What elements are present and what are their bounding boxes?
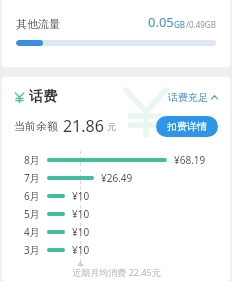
staticText: 扣费详情 bbox=[167, 120, 207, 133]
staticText: ¥10 bbox=[72, 243, 90, 257]
button[interactable]: 6月 bbox=[2, 187, 230, 205]
staticText: 7月 bbox=[24, 171, 40, 185]
staticText: 3月 bbox=[24, 243, 40, 257]
staticText: 其他流量 bbox=[16, 17, 60, 31]
button[interactable]: 7月 bbox=[2, 169, 230, 187]
staticText: 0.05 bbox=[148, 13, 174, 31]
button[interactable]: 扣费详情 bbox=[156, 116, 218, 137]
staticText: 6月 bbox=[24, 189, 40, 203]
staticText: ¥26.49 bbox=[101, 171, 133, 185]
staticText: 4月 bbox=[24, 225, 40, 239]
button[interactable]: 5月 bbox=[2, 205, 230, 223]
staticText: /0.49GB bbox=[186, 19, 216, 30]
staticText: 话费 bbox=[29, 88, 57, 106]
staticText: 21.86 bbox=[63, 115, 104, 137]
button[interactable]: 4月 bbox=[2, 223, 230, 241]
staticText: ¥10 bbox=[72, 207, 90, 221]
staticText: ¥10 bbox=[72, 189, 90, 203]
button[interactable]: 3月 bbox=[2, 241, 230, 259]
staticText: 话费充足 bbox=[168, 91, 208, 104]
staticText: 8月 bbox=[24, 153, 40, 167]
staticText: 元 bbox=[107, 121, 116, 132]
staticText: ¥68.19 bbox=[174, 153, 206, 167]
staticText: 近期月均消费 22.45元 bbox=[72, 266, 161, 278]
staticText: 5月 bbox=[24, 207, 40, 221]
staticText: ¥10 bbox=[72, 225, 90, 239]
button[interactable]: 8月 bbox=[2, 151, 230, 169]
button[interactable]: 话费充足 bbox=[168, 91, 218, 104]
staticText: 当前余额 bbox=[14, 119, 58, 133]
staticText: GB bbox=[174, 19, 186, 30]
